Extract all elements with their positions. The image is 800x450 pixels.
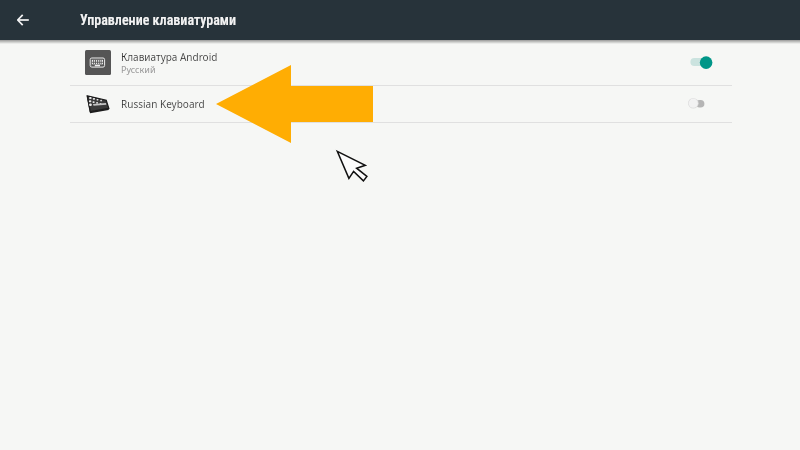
button[interactable]: Russian Keyboard: [0, 86, 800, 123]
button[interactable]: Клавиатура Android on: [684, 51, 720, 73]
button[interactable]: Back: [11, 8, 35, 32]
staticText: Клавиатура Android: [121, 50, 218, 64]
staticText: Russian Keyboard: [121, 97, 205, 111]
staticText: Управление клавиатурами: [80, 12, 237, 28]
button[interactable]: Russian Keyboard off: [684, 92, 720, 114]
staticText: Русский: [121, 63, 156, 75]
button[interactable]: Клавиатура Android: [0, 44, 800, 86]
